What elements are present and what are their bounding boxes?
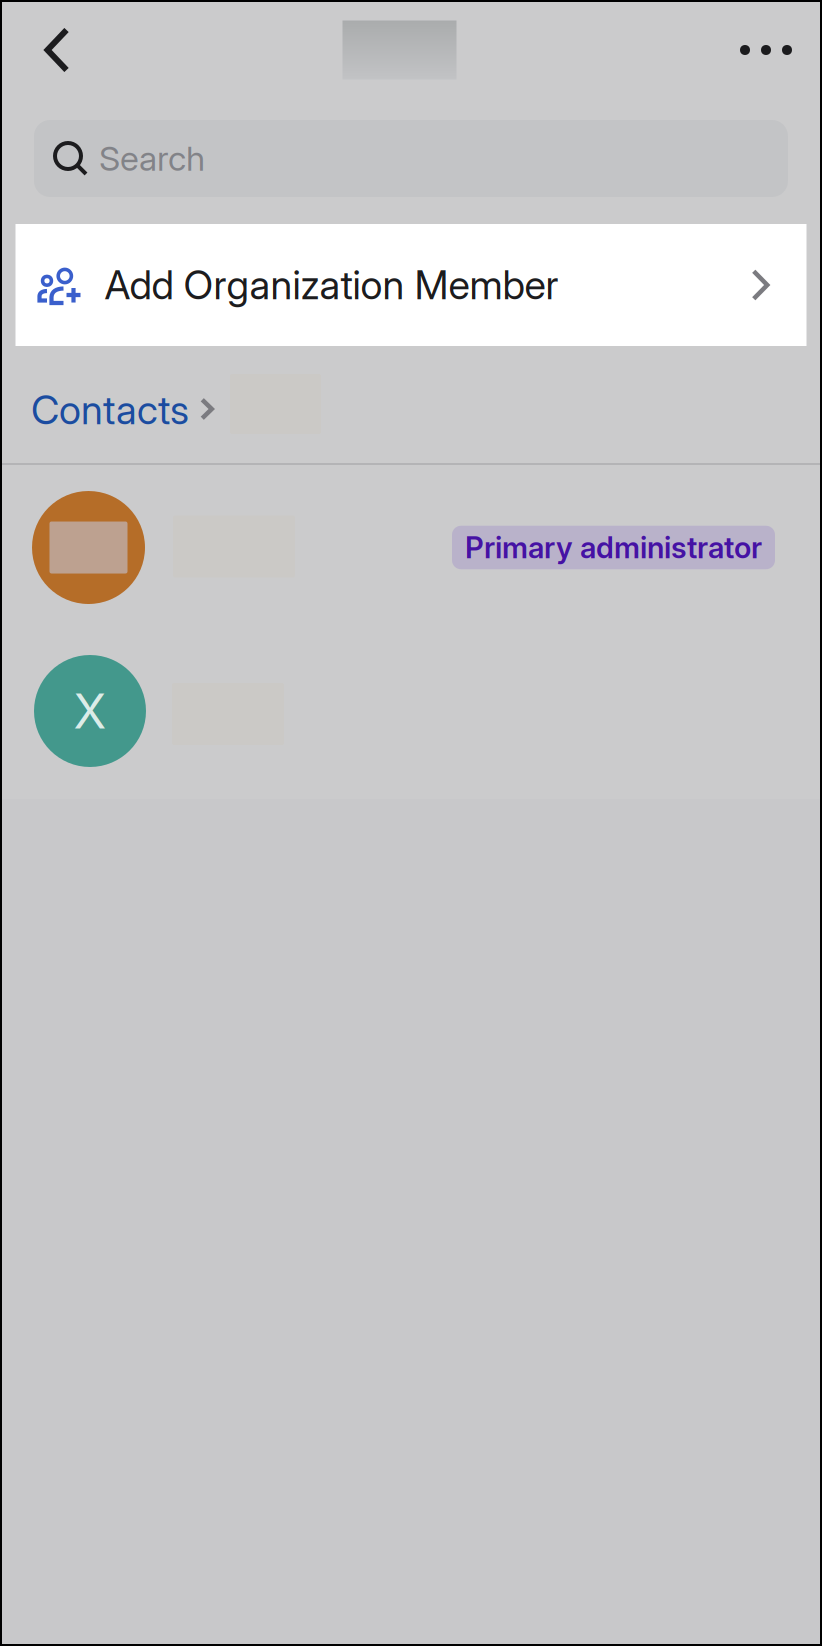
button[interactable]: Primary administrator [0,465,822,632]
staticText: X [73,682,106,740]
staticText: Add Organization Member [104,261,558,309]
button[interactable]: Add Organization Member [15,224,806,346]
button[interactable]: Back [0,0,98,100]
staticText: Contacts [31,386,189,434]
staticText: Primary administrator [465,530,762,565]
button[interactable]: More options [710,0,822,100]
staticText: Search [99,138,205,179]
button[interactable]: Contacts [0,375,214,434]
button[interactable]: Search [34,120,788,224]
button[interactable]: X [0,632,822,799]
